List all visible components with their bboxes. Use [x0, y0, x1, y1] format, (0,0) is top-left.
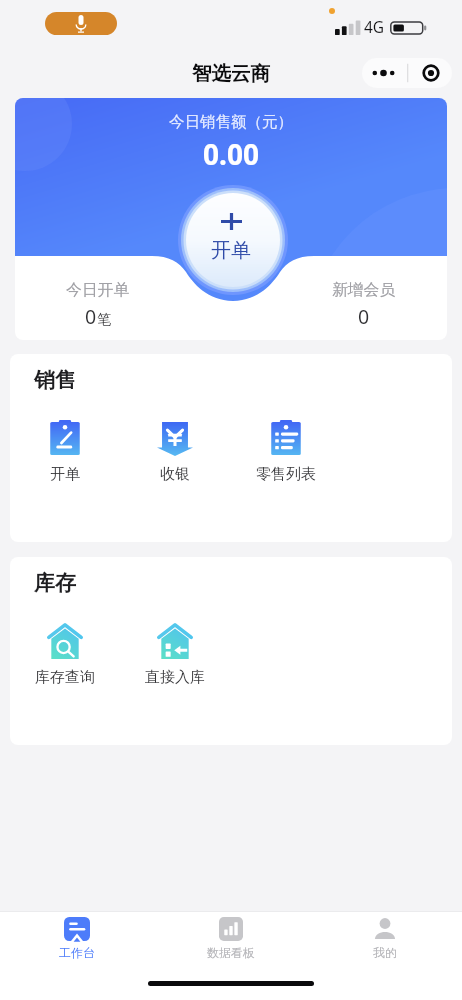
staticText: 我的: [373, 945, 397, 960]
button[interactable]: 零售列表: [230, 420, 341, 484]
button[interactable]: Recording in progress: [45, 12, 117, 35]
button[interactable]: 直接入库: [120, 623, 230, 687]
staticText: 4G: [364, 16, 385, 37]
button[interactable]: 工作台: [0, 912, 154, 968]
staticText: 开单: [211, 238, 251, 263]
button[interactable]: 今日开单: [15, 280, 181, 330]
staticText: 数据看板: [207, 945, 255, 960]
staticText: 笔: [97, 311, 111, 329]
button[interactable]: 开单: [10, 420, 120, 484]
staticText: 今日销售额（元）: [169, 112, 293, 132]
staticText: 零售列表: [256, 465, 316, 484]
staticText: 库存: [34, 570, 76, 596]
staticText: 0: [85, 303, 97, 330]
button[interactable]: More options and close mini program: [362, 58, 452, 88]
button[interactable]: 库存查询: [10, 623, 120, 687]
button[interactable]: 数据看板: [154, 912, 308, 968]
staticText: 开单: [50, 465, 80, 484]
staticText: 收银: [160, 465, 190, 484]
button[interactable]: 新增会员: [281, 280, 447, 330]
staticText: 销售: [34, 367, 76, 393]
staticText: 今日开单: [66, 280, 130, 300]
button[interactable]: 我的: [308, 912, 462, 968]
staticText: 0: [358, 303, 370, 330]
button[interactable]: 开单: [185, 191, 277, 283]
staticText: 智选云商: [192, 61, 270, 86]
staticText: 工作台: [59, 945, 95, 960]
staticText: 0.00: [203, 135, 259, 173]
staticText: 库存查询: [35, 668, 95, 687]
button[interactable]: 收银: [120, 420, 230, 484]
staticText: 直接入库: [145, 668, 205, 687]
staticText: 新增会员: [332, 280, 396, 300]
